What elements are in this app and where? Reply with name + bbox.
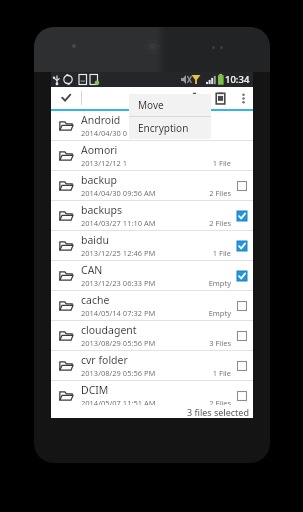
staticText: 2014/04/30 09:56 AM	[81, 188, 156, 198]
button[interactable]: cloudagent	[51, 321, 253, 350]
staticText: 3 files selected	[187, 406, 249, 418]
staticText: baidu	[81, 233, 110, 247]
button[interactable]: Select cvr folder	[231, 351, 253, 380]
button[interactable]: Paste	[207, 87, 233, 109]
button[interactable]: Select CAN	[231, 261, 253, 290]
staticText: 1 File	[191, 158, 231, 168]
staticText	[191, 128, 231, 138]
staticText: Encryption	[138, 121, 189, 135]
button[interactable]: Select cloudagent	[231, 321, 253, 350]
staticText: DCIM	[81, 383, 109, 397]
button[interactable]: cvr folder	[51, 351, 253, 380]
button[interactable]: baidu	[51, 231, 253, 260]
button[interactable]: Encryption	[129, 117, 211, 139]
staticText: 2013/12/12 1	[81, 158, 128, 168]
button[interactable]: DCIM	[51, 381, 253, 410]
staticText: Empty	[191, 278, 231, 288]
staticText: Aomori	[81, 143, 118, 157]
button[interactable]: Android	[51, 111, 253, 140]
staticText: 1 File	[191, 368, 231, 378]
button[interactable]: Select backup	[231, 171, 253, 200]
button[interactable]: cache	[51, 291, 253, 320]
button[interactable]: Aomori	[51, 141, 253, 170]
button[interactable]: Select baidu	[231, 231, 253, 260]
staticText: 2 Files	[191, 218, 231, 228]
staticText: backups	[81, 203, 122, 217]
staticText: 2014/03/27 11:10 AM	[81, 218, 156, 228]
button[interactable]: backup	[51, 171, 253, 200]
button[interactable]: Select DCIM	[231, 381, 253, 410]
staticText: 1 File	[191, 248, 231, 258]
staticText: cvr folder	[81, 353, 128, 367]
button[interactable]: Select backups	[231, 201, 253, 230]
staticText: 2013/08/29 05:56 PM	[81, 338, 156, 348]
staticText: 2 Files	[191, 398, 231, 408]
staticText: 2 Files	[191, 188, 231, 198]
staticText: 2014/05/14 07:32 PM	[81, 308, 156, 318]
staticText: 2013/08/29 05:56 PM	[81, 368, 156, 378]
staticText: 10:34	[225, 73, 250, 86]
staticText: 2014/04/30 0	[81, 128, 128, 138]
staticText: cloudagent	[81, 323, 137, 337]
staticText: 2013/12/25 12:46 PM	[81, 248, 156, 258]
button[interactable]: Move	[129, 94, 211, 116]
staticText: Android	[81, 113, 121, 127]
staticText: cache	[81, 293, 110, 307]
staticText: 3 Files	[191, 338, 231, 348]
staticText: backup	[81, 173, 117, 187]
button[interactable]: More options	[233, 87, 253, 109]
button[interactable]: Done	[51, 87, 81, 109]
button[interactable]: CAN	[51, 261, 253, 290]
button[interactable]: backups	[51, 201, 253, 230]
button[interactable]: Delete	[181, 87, 207, 109]
button[interactable]: Select cache	[231, 291, 253, 320]
staticText: Move	[138, 98, 164, 112]
staticText: 2013/12/23 06:33 PM	[81, 278, 156, 288]
staticText: 2014/05/07 11:51 AM	[81, 398, 156, 408]
staticText: CAN	[81, 263, 103, 277]
staticText: Empty	[191, 308, 231, 318]
